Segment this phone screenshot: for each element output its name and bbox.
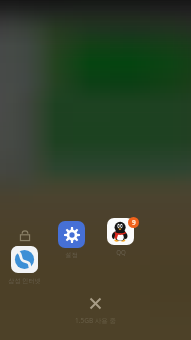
button[interactable]: 삼성 인터넷 (0, 246, 50, 284)
button[interactable]: Close (84, 292, 107, 315)
staticText: 설정 (65, 251, 78, 259)
staticText: QQ (116, 248, 126, 256)
staticText: 1.5GB 사용 중 (0, 316, 191, 325)
button[interactable]: Locked app (17, 228, 33, 244)
staticText: 삼성 인터넷 (8, 276, 41, 284)
staticText: 9 (132, 218, 136, 227)
button[interactable]: 9 (95, 218, 146, 256)
button[interactable]: 설정 (46, 221, 97, 259)
